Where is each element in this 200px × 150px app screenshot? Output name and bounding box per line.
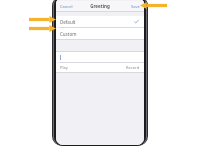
other: Callout arrow [29,16,56,23]
staticText: Default [60,19,76,25]
staticText: Save [131,4,140,9]
button[interactable]: Play [60,65,68,70]
button[interactable]: Custom [56,28,144,39]
button[interactable] [56,52,144,62]
other: Callout arrow [29,25,56,32]
button[interactable]: Save [130,3,141,10]
staticText: Custom [60,31,77,37]
button[interactable]: Default [56,16,144,27]
staticText: Record [126,65,140,70]
staticText: Greeting [90,3,110,9]
button[interactable]: Record [126,65,140,70]
staticText: Cancel [60,4,73,9]
staticText: Play [60,65,68,70]
other: Selected [134,19,139,24]
button[interactable]: Cancel [59,3,74,10]
other: Callout arrow [140,2,167,9]
